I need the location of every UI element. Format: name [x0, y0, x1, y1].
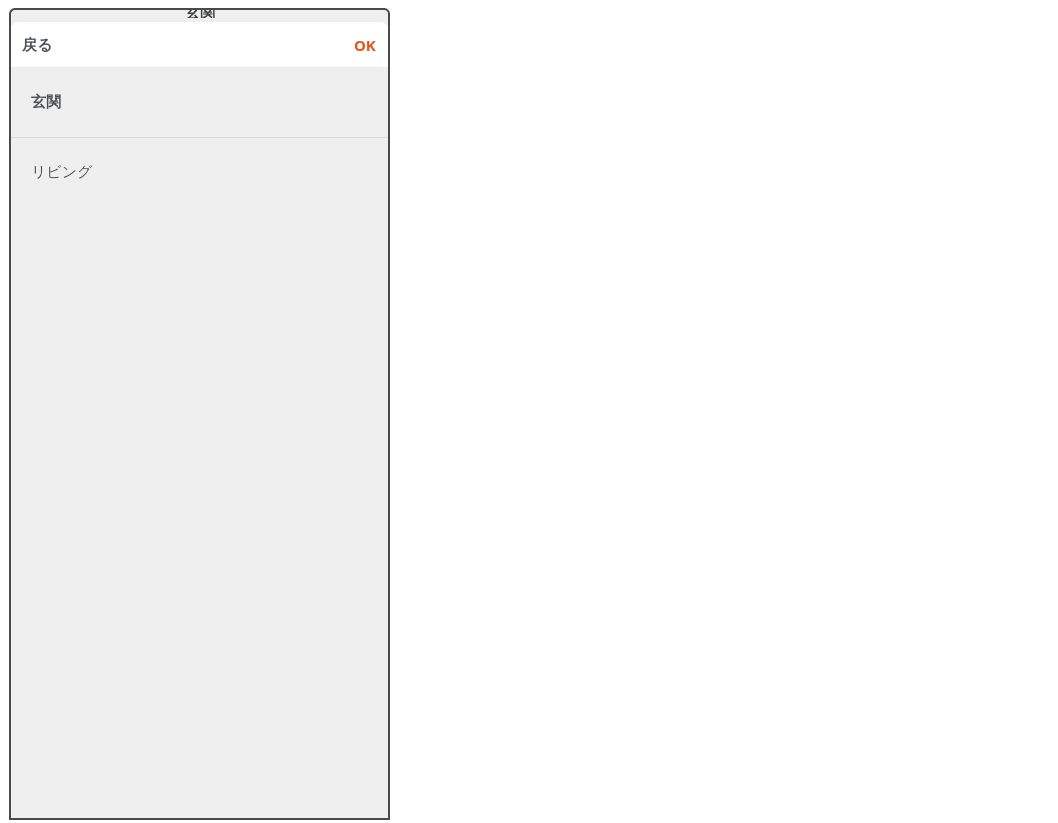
- button[interactable]: OK: [340, 27, 390, 63]
- staticText: リビング: [31, 163, 93, 182]
- button[interactable]: 玄関: [9, 68, 390, 137]
- staticText: 戻る: [22, 36, 53, 55]
- staticText: OK: [354, 35, 376, 55]
- button[interactable]: 戻る: [9, 28, 65, 63]
- staticText: 玄関: [185, 8, 215, 18]
- staticText: 玄関: [31, 93, 61, 112]
- button[interactable]: リビング: [9, 138, 390, 207]
